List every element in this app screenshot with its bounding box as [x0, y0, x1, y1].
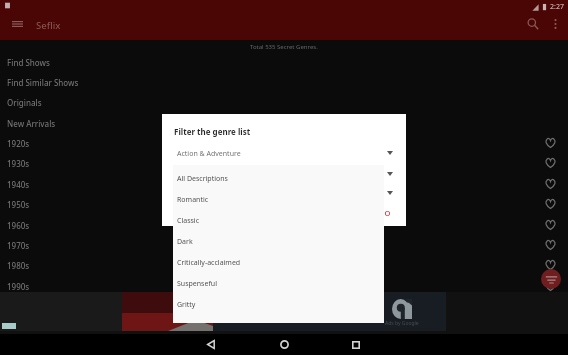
button[interactable]: GO	[374, 206, 396, 220]
button[interactable]: Suspenseful	[173, 273, 384, 294]
button[interactable]: Add to favourites	[540, 153, 560, 173]
staticText: All Descriptions	[177, 170, 228, 180]
button[interactable]: 1940s	[0, 174, 568, 194]
button[interactable]: 1920s	[0, 133, 568, 153]
staticText: Action & Adventure	[177, 149, 241, 159]
button[interactable]: 1970s	[0, 235, 568, 255]
button[interactable]: Find Similar Shows	[0, 72, 568, 92]
button[interactable]: Critically-acclaimed	[173, 252, 384, 273]
staticText: 1960s	[7, 220, 30, 231]
button[interactable]: Recent apps	[335, 334, 377, 355]
button[interactable]: 1930s	[0, 153, 568, 173]
button[interactable]: Home	[263, 334, 305, 355]
button[interactable]: Action & Adventure	[177, 146, 393, 162]
staticText: 1930s	[7, 158, 30, 169]
button[interactable]: Originals	[0, 92, 568, 112]
staticText: 1940s	[7, 179, 30, 190]
staticText: Filter the genre list	[174, 126, 251, 137]
staticText: 1970s	[7, 240, 30, 251]
button[interactable]: Add to favourites	[540, 194, 560, 214]
button[interactable]: 1960s	[0, 215, 568, 235]
button[interactable]: New Arrivals	[0, 113, 568, 133]
staticText: Originals	[7, 97, 42, 108]
button[interactable]: Search	[521, 12, 545, 36]
button[interactable]: Classic	[173, 210, 384, 231]
button[interactable]: Gritty	[173, 294, 384, 315]
button[interactable]: Add to favourites	[540, 174, 560, 194]
staticText: 1920s	[7, 138, 30, 149]
staticText: 1990s	[7, 281, 30, 292]
button[interactable]: Add to favourites	[540, 235, 560, 255]
button[interactable]: Add to favourites	[540, 276, 560, 296]
staticText: Gritty	[177, 300, 196, 310]
staticText: All Descriptions	[177, 174, 228, 184]
button[interactable]: Any Rating	[177, 186, 393, 202]
button[interactable]: 1990s	[0, 276, 568, 296]
staticText: Classic	[177, 216, 200, 226]
button[interactable]: Add to favourites	[540, 133, 560, 153]
button[interactable]: 1950s	[0, 194, 568, 214]
staticText: Romantic	[177, 195, 209, 205]
staticText: New Arrivals	[7, 118, 56, 129]
staticText: Ads by Google	[385, 320, 419, 327]
button[interactable]: All Descriptions	[173, 168, 384, 189]
staticText: Critically-acclaimed	[177, 258, 241, 268]
button[interactable]: More options	[543, 12, 567, 36]
staticText: Dark	[177, 237, 193, 247]
button[interactable]: Open navigation drawer	[5, 12, 29, 36]
staticText: Any Rating	[177, 189, 213, 199]
staticText: Find Shows	[7, 57, 50, 68]
button[interactable]: Add to favourites	[540, 215, 560, 235]
button[interactable]: All Descriptions	[177, 167, 393, 183]
button[interactable]: Back	[190, 334, 232, 355]
staticText: Find Similar Shows	[7, 77, 79, 88]
staticText: 1980s	[7, 260, 30, 271]
button[interactable]: 1980s	[0, 255, 568, 275]
button[interactable]: Dark	[173, 231, 384, 252]
staticText: Suspenseful	[177, 279, 217, 289]
staticText: 1950s	[7, 199, 30, 210]
button[interactable]: Find Shows	[0, 52, 568, 72]
staticText: GO	[379, 208, 391, 218]
button[interactable]: Romantic	[173, 189, 384, 210]
button[interactable]: Add to favourites	[540, 255, 560, 275]
staticText: Total 535 Secret Genres.	[250, 43, 318, 51]
staticText: 2:27	[550, 2, 564, 12]
staticText: Seflix	[36, 19, 61, 32]
button[interactable]: Filter	[541, 269, 561, 289]
